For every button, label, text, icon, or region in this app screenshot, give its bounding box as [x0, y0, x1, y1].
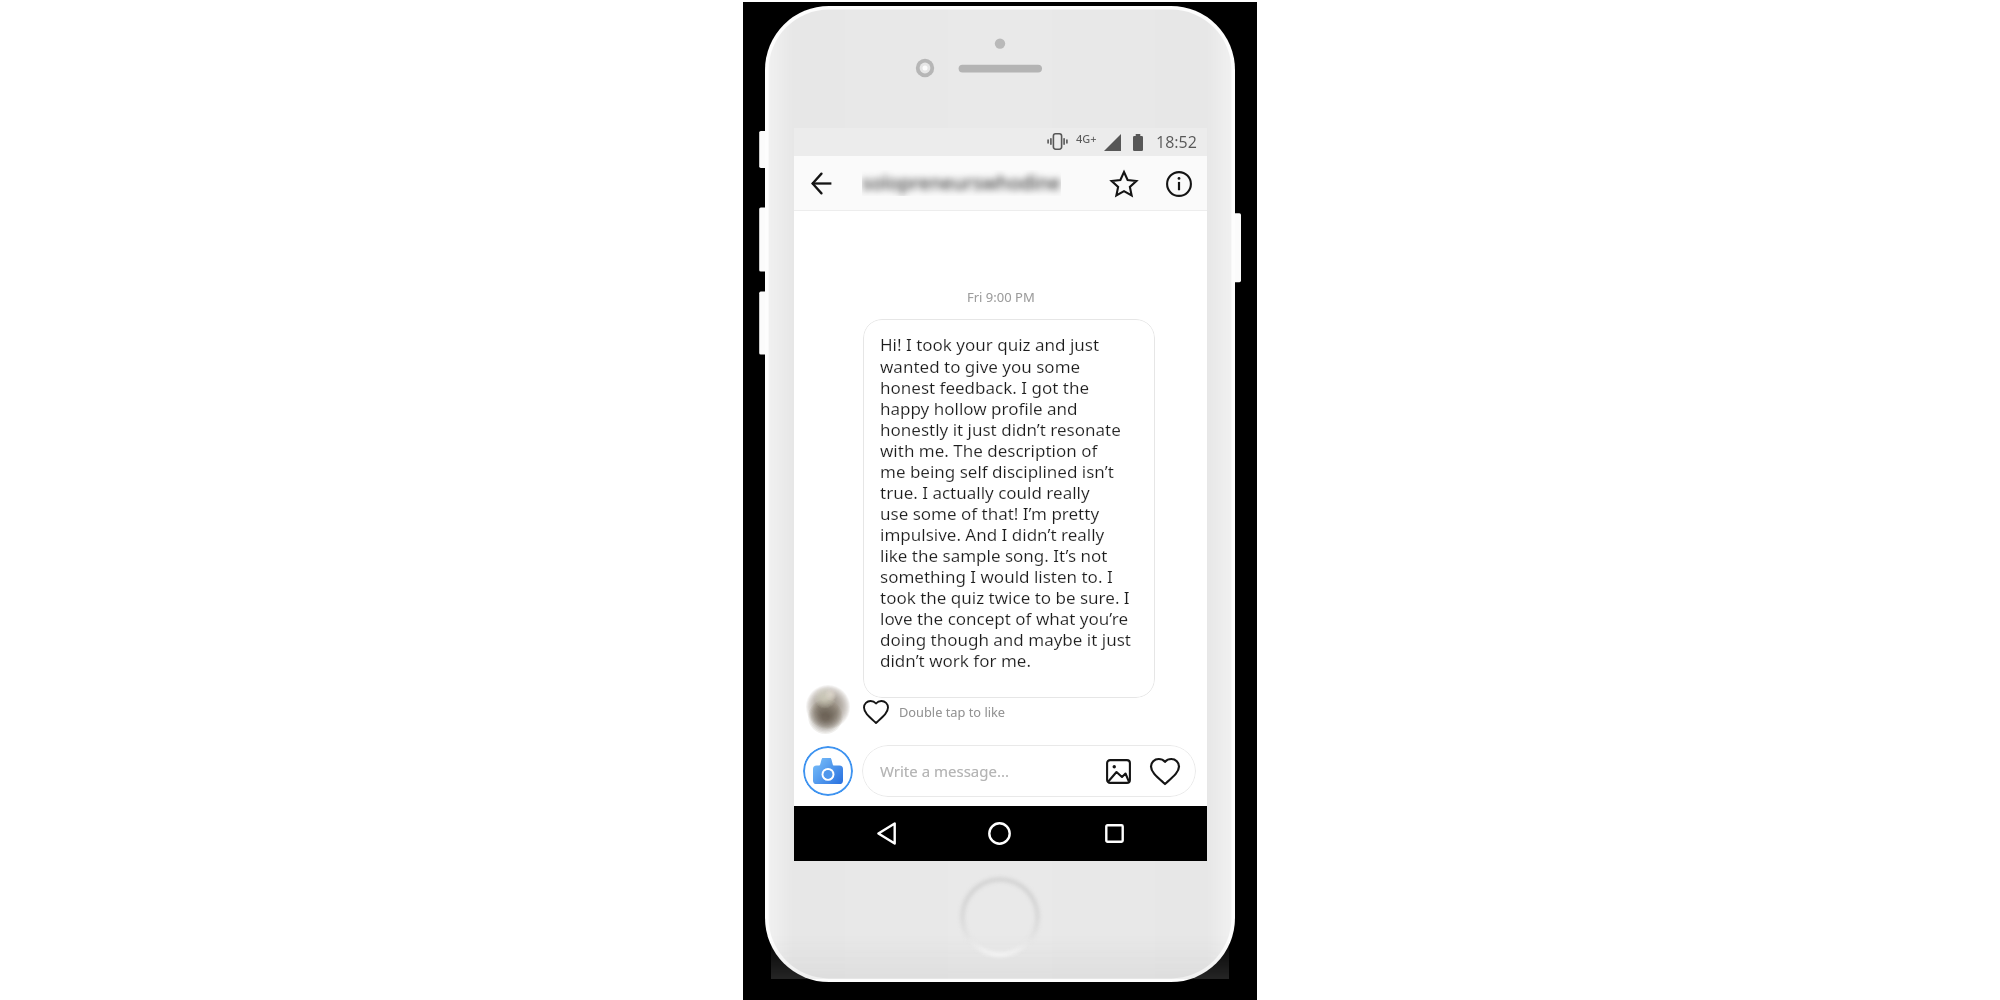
button[interactable]: Back: [801, 156, 842, 211]
button[interactable]: Open camera: [803, 746, 853, 796]
button[interactable]: Send photo: [1093, 746, 1144, 797]
staticText: 4G+: [1076, 131, 1097, 146]
staticText: solopreneurswhodine: [862, 170, 1061, 196]
button[interactable]: Write a message: [862, 745, 1196, 797]
staticText: Double tap to like: [899, 703, 1006, 720]
staticText: Hi! I took your quiz and just wanted to …: [880, 333, 1131, 672]
button[interactable]: Send like: [1139, 746, 1190, 797]
staticText: 18:52: [1156, 131, 1197, 153]
button[interactable]: Back: [852, 806, 920, 861]
button[interactable]: Conversation info: [1158, 156, 1199, 211]
button[interactable]: Hi! I took your quiz and just wanted to …: [863, 319, 1155, 698]
button[interactable]: Recent apps: [1080, 806, 1148, 861]
button[interactable]: Like message: [862, 698, 890, 726]
staticText: Write a message...: [880, 761, 1009, 781]
staticText: Fri 9:00 PM: [967, 288, 1035, 306]
button[interactable]: Favorite: [1103, 156, 1144, 211]
button[interactable]: solopreneurswhodine: [842, 156, 1102, 211]
button[interactable]: Home: [965, 806, 1033, 861]
